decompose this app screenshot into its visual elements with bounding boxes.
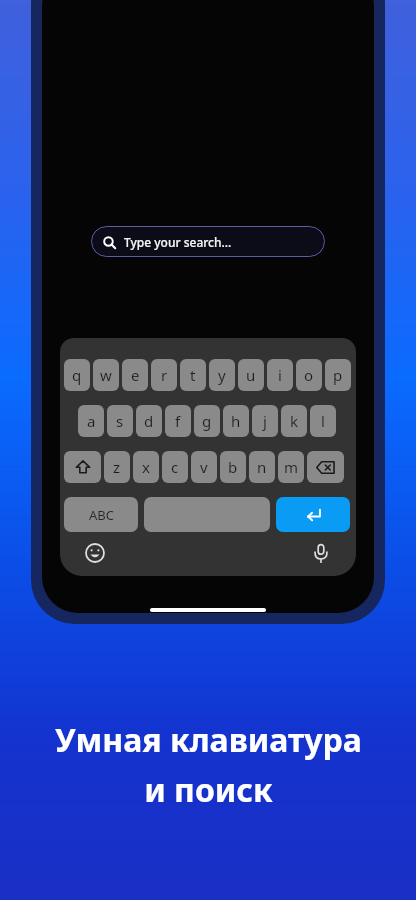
staticText: d — [144, 411, 154, 431]
staticText: Type your search... — [124, 234, 232, 250]
staticText: j — [263, 411, 267, 431]
staticText: u — [246, 365, 256, 385]
staticText: k — [290, 411, 299, 431]
staticText: y — [218, 365, 226, 385]
button[interactable]: Voice input — [308, 540, 334, 566]
staticText: v — [200, 457, 208, 477]
staticText: w — [100, 365, 112, 385]
staticText: h — [231, 411, 241, 431]
staticText: f — [175, 411, 181, 431]
staticText: x — [142, 457, 150, 477]
staticText: o — [304, 365, 314, 385]
button[interactable]: n — [249, 451, 275, 483]
button[interactable]: r — [151, 359, 177, 391]
button[interactable]: t — [180, 359, 206, 391]
staticText: q — [72, 365, 82, 385]
button[interactable]: a — [78, 405, 104, 437]
staticText: i — [278, 365, 282, 385]
staticText: e — [131, 365, 140, 385]
button[interactable]: Enter — [276, 497, 350, 532]
button[interactable]: j — [252, 405, 278, 437]
button[interactable]: f — [165, 405, 191, 437]
button[interactable]: v — [191, 451, 217, 483]
staticText: c — [171, 457, 179, 477]
staticText: l — [321, 411, 325, 431]
button[interactable]: k — [281, 405, 307, 437]
button[interactable]: Shift — [64, 451, 101, 483]
staticText: t — [190, 365, 196, 385]
staticText: и поиск — [144, 768, 273, 812]
button[interactable]: x — [133, 451, 159, 483]
button[interactable]: h — [223, 405, 249, 437]
staticText: z — [113, 457, 121, 477]
staticText: ABC — [89, 506, 114, 524]
staticText: a — [87, 411, 96, 431]
staticText: m — [284, 457, 299, 477]
staticText: n — [257, 457, 267, 477]
button[interactable]: i — [267, 359, 293, 391]
button[interactable]: c — [162, 451, 188, 483]
button[interactable]: Emoji — [82, 540, 108, 566]
button[interactable]: s — [107, 405, 133, 437]
staticText: b — [228, 457, 238, 477]
button[interactable]: b — [220, 451, 246, 483]
button[interactable]: m — [278, 451, 304, 483]
staticText: g — [202, 411, 212, 431]
button[interactable]: Backspace — [307, 451, 344, 483]
staticText: Умная клавиатура — [55, 718, 362, 762]
button[interactable]: q — [64, 359, 90, 391]
button[interactable]: l — [310, 405, 336, 437]
staticText: r — [161, 365, 168, 385]
button[interactable]: Type your search... — [91, 226, 325, 257]
button[interactable]: Space — [144, 497, 270, 532]
button[interactable]: y — [209, 359, 235, 391]
button[interactable]: u — [238, 359, 264, 391]
staticText: s — [116, 411, 124, 431]
button[interactable]: e — [122, 359, 148, 391]
button[interactable]: g — [194, 405, 220, 437]
button[interactable]: z — [104, 451, 130, 483]
button[interactable]: ABC — [64, 497, 138, 532]
button[interactable]: w — [93, 359, 119, 391]
staticText: p — [333, 365, 343, 385]
button[interactable]: d — [136, 405, 162, 437]
button[interactable]: p — [325, 359, 351, 391]
button[interactable]: o — [296, 359, 322, 391]
